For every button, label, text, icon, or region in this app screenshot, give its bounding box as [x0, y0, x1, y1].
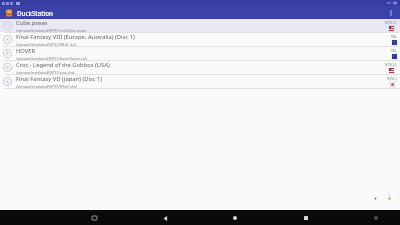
staticText: PAL	[391, 49, 397, 53]
button[interactable]: Croc - Legend of the Gobbos (USA)	[0, 61, 400, 74]
staticText: /storage/emulated/0/PS1/exe/Cube.psexe	[16, 28, 87, 32]
button[interactable]: Home	[228, 211, 242, 225]
button[interactable]: Back	[158, 211, 172, 225]
staticText: Final Fantasy VIII (Europe, Australia) (…	[16, 33, 135, 41]
staticText: NTSC-U	[385, 21, 397, 25]
button[interactable]: Cube.psexe	[0, 19, 400, 32]
staticText: PAL	[391, 35, 397, 39]
staticText: Cube.psexe	[16, 19, 48, 27]
button[interactable]: Screenshot	[370, 212, 382, 224]
staticText: DuckStation	[17, 9, 53, 17]
button[interactable]: Add game	[384, 193, 395, 204]
staticText: /storage/emulated/0/PS1/hover/hover.cue	[16, 56, 87, 60]
button[interactable]: Final Fantasy VII (Japan) (Disc 1)	[0, 75, 400, 88]
button[interactable]: Sort	[370, 193, 381, 204]
button[interactable]: App icon	[4, 8, 13, 17]
staticText: Croc - Legend of the Gobbos (USA)	[16, 61, 110, 69]
staticText: /storage/emulated/0/PS1/ff8d1.chd	[16, 42, 76, 46]
staticText: NTSC-U	[385, 63, 397, 67]
button[interactable]: More options	[386, 8, 396, 18]
staticText: Final Fantasy VII (Japan) (Disc 1)	[16, 75, 103, 83]
button[interactable]: Recents	[299, 211, 313, 225]
button[interactable]: Final Fantasy VIII (Europe, Australia) (…	[0, 33, 400, 46]
staticText: /storage/emulated/0/PS1/croc.chd	[16, 70, 75, 74]
staticText: NTSC-J	[387, 77, 397, 81]
button[interactable]: Keyboard	[87, 211, 101, 225]
staticText: HOVER	[16, 47, 36, 55]
staticText: /storage/emulated/0/PS1/ff7jp1.chd	[16, 84, 77, 88]
button[interactable]: HOVER	[0, 47, 400, 60]
